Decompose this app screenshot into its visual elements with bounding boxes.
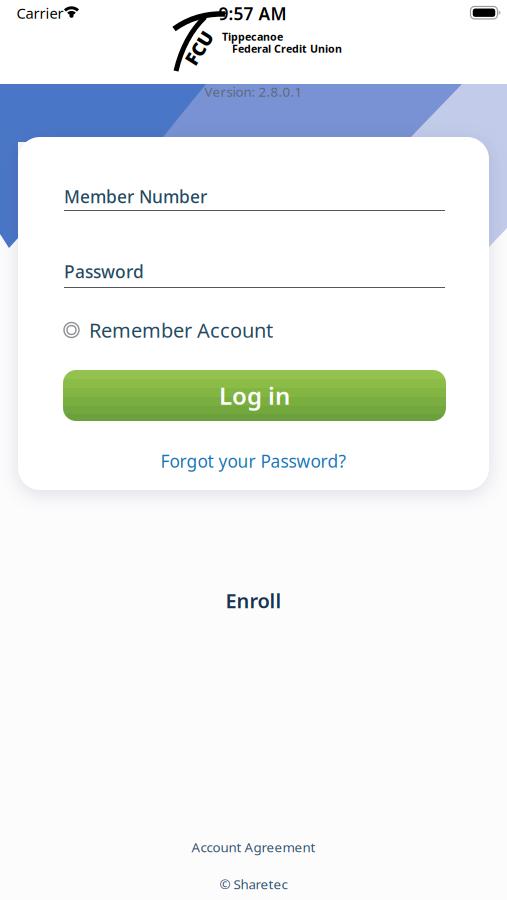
staticText: Federal Credit Union [232,41,342,56]
staticText: Remember Account [89,317,273,343]
staticText: 9:57 AM [218,2,286,25]
button[interactable]: Member Number [64,175,445,215]
button[interactable]: Enroll [193,583,313,617]
staticText: Enroll [225,587,281,614]
staticText: Forgot your Password? [160,449,346,472]
staticText: Log in [219,380,290,411]
staticText: Carrier [16,3,63,23]
staticText: Account Agreement [191,838,315,856]
staticText: Password [64,260,144,283]
staticText: FCU [181,36,217,60]
button[interactable]: Remember Account [64,313,445,347]
staticText: Tippecanoe [222,29,283,44]
staticText: © Sharetec [219,875,287,893]
staticText: Version: 2.8.0.1 [204,83,302,100]
button[interactable]: Forgot your Password? [123,446,383,476]
button[interactable]: Password [64,250,445,290]
button[interactable]: Log in [63,370,446,421]
button[interactable]: Account Agreement [143,834,363,860]
staticText: Member Number [64,185,207,208]
